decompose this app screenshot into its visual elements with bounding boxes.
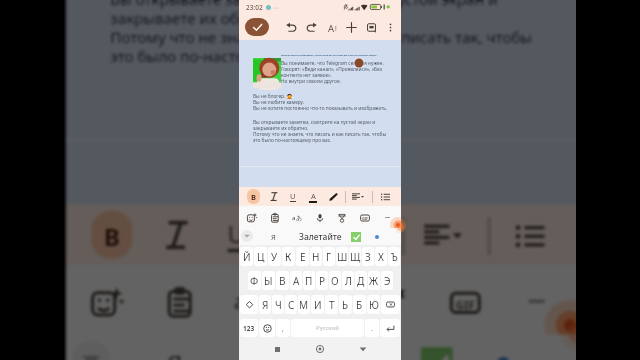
button[interactable]: Check emoji [351,232,361,242]
button[interactable]: П [303,271,315,290]
button[interactable]: Text colour [305,188,321,205]
button[interactable]: Ц [254,247,267,266]
button[interactable]: Emoji [259,319,275,337]
button[interactable]: Т [325,295,338,314]
button[interactable]: С [285,295,297,314]
staticText: a [292,214,296,222]
button[interactable]: Highlighter [338,208,389,262]
button[interactable]: Ф [248,271,261,290]
button[interactable]: . [365,319,379,337]
button[interactable]: К [282,247,295,266]
button[interactable]: У [268,247,281,266]
button[interactable]: Г [323,247,335,266]
button[interactable]: B [91,211,132,258]
button[interactable]: GIF [440,277,488,325]
staticText: Й [243,250,251,264]
button[interactable]: Bulleted list [503,208,554,262]
button[interactable]: Н [310,247,322,266]
button[interactable]: Ю [367,295,380,314]
button[interactable]: , [276,319,290,337]
button[interactable]: Back [352,338,374,360]
button[interactable]: Insert [342,16,360,38]
button[interactable]: Е [296,247,309,266]
button[interactable]: Э [381,271,393,290]
button[interactable]: Р [316,271,328,290]
staticText: , [282,324,284,333]
button[interactable]: В [276,271,289,290]
staticText: Ч [275,298,282,312]
button[interactable]: О [329,271,341,290]
button[interactable]: Clipboard [155,277,202,325]
button[interactable]: Underline [285,188,301,205]
button[interactable]: Я [259,295,271,314]
button[interactable]: И [311,295,324,314]
button[interactable]: Italic [266,188,282,205]
button[interactable]: Stickers [244,210,259,225]
button[interactable]: Stickers [82,277,129,325]
button[interactable]: Залетайте [297,229,343,244]
button[interactable]: Я [266,229,280,244]
button[interactable]: Save note [245,18,269,36]
button[interactable]: Ш [336,247,348,266]
button[interactable]: Enter [380,319,400,337]
staticText: U [228,217,247,249]
button[interactable]: Text colour [275,208,326,262]
button[interactable]: Backspace [381,295,400,314]
button[interactable]: Underline [212,208,262,262]
button[interactable]: Ъ [388,247,400,266]
button[interactable]: Undo [282,16,300,38]
button[interactable]: Залетайте [250,338,396,360]
button[interactable]: Clipboard [267,210,282,225]
button[interactable]: Русский [291,319,364,337]
button[interactable]: Б [353,295,366,314]
button[interactable]: Translate [224,277,272,325]
button[interactable]: Redo [302,16,320,38]
button[interactable]: Text formatting [323,16,341,38]
button[interactable]: Й [240,247,253,266]
button[interactable]: Voice input [297,277,345,325]
button[interactable]: Italic [151,208,202,262]
button[interactable]: Check emoji [421,347,453,360]
button[interactable]: Recent apps [266,338,288,360]
staticText: Ш [337,250,348,264]
button[interactable]: Paragraph alignment [418,208,468,262]
button[interactable]: More tools [380,210,394,224]
button[interactable]: Щ [349,247,361,266]
button[interactable]: Д [355,271,367,290]
staticText: О [331,274,339,288]
button[interactable]: Themes [334,210,349,225]
staticText: Я [271,232,276,242]
button[interactable]: Expand suggestions [72,341,110,360]
button[interactable]: Comment [362,16,380,38]
button[interactable]: More options [381,16,399,38]
staticText: С [288,298,295,312]
button[interactable]: Bulleted list [377,188,393,205]
staticText: Ф [250,274,259,288]
button[interactable]: Ь [339,295,352,314]
button[interactable]: Home [309,338,331,360]
button[interactable]: Л [342,271,354,290]
button[interactable]: Ч [272,295,284,314]
staticText: Б [356,298,363,312]
button[interactable]: B [247,189,260,204]
button[interactable]: 123 [240,319,258,337]
button[interactable]: З [362,247,374,266]
staticText: Л [345,274,352,288]
button[interactable]: Expand suggestions [241,230,253,242]
button[interactable]: Ж [368,271,380,290]
button[interactable]: Х [375,247,387,266]
staticText: A [294,217,310,249]
staticText: Н [312,250,320,264]
button[interactable]: Shift [240,295,258,314]
button[interactable]: Voice input [312,210,327,225]
button[interactable]: Translate [289,210,304,225]
button[interactable]: Ы [262,271,275,290]
button[interactable]: Highlighter [325,188,341,205]
button[interactable]: Themes [367,277,415,325]
button[interactable]: More tools [513,277,557,322]
button[interactable]: Я [151,338,196,360]
button[interactable]: А [290,271,302,290]
button[interactable]: GIF [357,210,372,225]
button[interactable]: Paragraph alignment [350,188,366,205]
button[interactable]: М [298,295,310,314]
